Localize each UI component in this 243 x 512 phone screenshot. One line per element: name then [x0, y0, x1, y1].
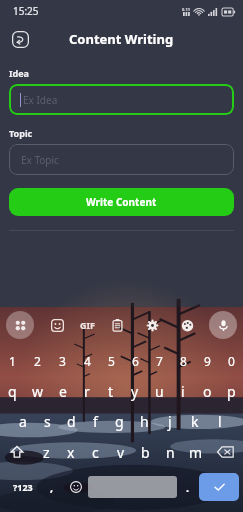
- button[interactable]: 3: [50, 346, 75, 376]
- button[interactable]: m: [183, 436, 208, 468]
- staticText: b: [141, 443, 150, 462]
- button[interactable]: Emoji: [63, 468, 88, 506]
- staticText: r: [84, 382, 90, 401]
- staticText: ?123: [13, 481, 33, 493]
- button[interactable]: GIF: [80, 312, 95, 338]
- button[interactable]: 6: [123, 346, 147, 376]
- button[interactable]: c: [83, 436, 108, 468]
- staticText: u: [155, 382, 164, 401]
- staticText: Content Writing: [69, 30, 174, 48]
- button[interactable]: i: [171, 376, 195, 406]
- button[interactable]: f: [83, 406, 107, 436]
- staticText: w: [32, 382, 44, 401]
- staticText: Ex Idea: [23, 93, 58, 107]
- button[interactable]: Voice input: [209, 311, 237, 339]
- staticText: n: [166, 443, 175, 462]
- button[interactable]: Shift: [0, 436, 34, 468]
- button[interactable]: ?123: [4, 468, 41, 506]
- button[interactable]: 4: [75, 346, 99, 376]
- staticText: i: [181, 382, 185, 401]
- staticText: v: [117, 443, 125, 462]
- button[interactable]: 5: [99, 346, 123, 376]
- staticText: h: [140, 412, 149, 431]
- button[interactable]: 7: [147, 346, 171, 376]
- staticText: ,: [50, 480, 54, 495]
- button[interactable]: z: [34, 436, 58, 468]
- staticText: 9: [204, 353, 211, 369]
- staticText: k: [191, 412, 199, 431]
- button[interactable]: Backspace: [208, 436, 243, 468]
- staticText: Idea: [9, 67, 29, 79]
- staticText: 4: [84, 353, 91, 369]
- button[interactable]: 9: [195, 346, 219, 376]
- button[interactable]: k: [182, 406, 207, 436]
- button[interactable]: Back: [9, 28, 31, 50]
- staticText: e: [59, 382, 67, 401]
- staticText: s: [44, 412, 51, 431]
- button[interactable]: w: [25, 376, 50, 406]
- button[interactable]: q: [0, 376, 25, 406]
- staticText: 3: [59, 353, 66, 369]
- staticText: 15:25: [13, 4, 39, 18]
- staticText: a: [19, 412, 27, 431]
- button[interactable]: d: [59, 406, 83, 436]
- staticText: z: [43, 443, 50, 462]
- button[interactable]: ,: [41, 468, 63, 506]
- button[interactable]: Stickers: [44, 312, 70, 338]
- button[interactable]: 2: [25, 346, 50, 376]
- button[interactable]: j: [157, 406, 182, 436]
- staticText: GIF: [80, 319, 95, 331]
- button[interactable]: u: [147, 376, 171, 406]
- button[interactable]: v: [108, 436, 133, 468]
- staticText: Write Content: [86, 195, 157, 209]
- staticText: p: [227, 382, 236, 401]
- button[interactable]: b: [133, 436, 158, 468]
- button[interactable]: Ex Idea: [9, 84, 234, 115]
- button[interactable]: r: [75, 376, 99, 406]
- button[interactable]: l: [207, 406, 232, 436]
- button[interactable]: g: [107, 406, 132, 436]
- button[interactable]: Write Content: [9, 188, 234, 216]
- staticText: y: [131, 382, 139, 401]
- staticText: d: [67, 412, 76, 431]
- staticText: Ex Topic: [21, 153, 59, 167]
- button[interactable]: s: [35, 406, 59, 436]
- button[interactable]: Space: [88, 476, 177, 498]
- button[interactable]: Ex Topic: [9, 144, 234, 175]
- button[interactable]: .: [177, 468, 199, 506]
- staticText: 0: [228, 353, 235, 369]
- staticText: 5: [108, 353, 115, 369]
- staticText: o: [203, 382, 212, 401]
- staticText: t: [108, 382, 114, 401]
- button[interactable]: Settings: [139, 312, 165, 338]
- button[interactable]: 1: [0, 346, 25, 376]
- button[interactable]: 0: [219, 346, 243, 376]
- staticText: x: [67, 443, 75, 462]
- button[interactable]: n: [158, 436, 183, 468]
- staticText: 6: [132, 353, 139, 369]
- button[interactable]: p: [219, 376, 243, 406]
- button[interactable]: y: [123, 376, 147, 406]
- button[interactable]: Enter: [199, 473, 239, 501]
- button[interactable]: x: [58, 436, 83, 468]
- button[interactable]: a: [11, 406, 35, 436]
- button[interactable]: Keyboard apps: [6, 311, 34, 339]
- button[interactable]: o: [195, 376, 219, 406]
- staticText: 1: [9, 353, 16, 369]
- staticText: 0.11: [182, 7, 190, 12]
- staticText: 2: [34, 353, 41, 369]
- button[interactable]: e: [50, 376, 75, 406]
- staticText: 8: [180, 353, 187, 369]
- button[interactable]: 8: [171, 346, 195, 376]
- staticText: 7: [156, 353, 163, 369]
- staticText: m: [189, 443, 203, 462]
- staticText: f: [93, 412, 98, 431]
- button[interactable]: t: [99, 376, 123, 406]
- button[interactable]: Clipboard: [104, 312, 130, 338]
- button[interactable]: Theme: [174, 312, 200, 338]
- staticText: Topic: [9, 127, 33, 139]
- button[interactable]: h: [132, 406, 157, 436]
- staticText: l: [218, 412, 222, 431]
- staticText: c: [92, 443, 99, 462]
- staticText: .: [186, 480, 190, 495]
